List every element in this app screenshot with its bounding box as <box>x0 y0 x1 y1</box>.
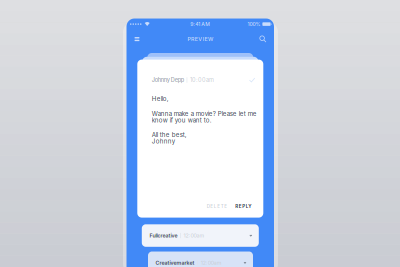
staticText: PREVIEW <box>187 36 213 42</box>
staticText: Hello, <box>152 95 169 102</box>
button[interactable]: Fullcreative <box>142 224 259 247</box>
staticText: REPLY <box>235 204 251 209</box>
staticText: 12:00am <box>201 259 222 266</box>
staticText: know if you want to. <box>152 116 212 124</box>
staticText: 12:00am <box>184 232 205 239</box>
staticText: 10:00am <box>190 77 214 83</box>
button[interactable]: Menu <box>127 32 147 46</box>
staticText: All the best, <box>152 131 187 138</box>
button[interactable]: REPLY <box>227 204 251 209</box>
staticText: 100% <box>248 21 261 27</box>
staticText: Johnny Depp <box>152 77 184 83</box>
button[interactable]: Creativemarket <box>148 251 253 267</box>
staticText: DELETE <box>207 204 227 209</box>
staticText: Creativemarket <box>156 260 195 266</box>
button[interactable]: Search <box>253 32 273 46</box>
button[interactable]: DELETE <box>207 204 227 209</box>
staticText: 9:41 AM <box>190 21 210 27</box>
staticText: Wanna make a movie? Please let me <box>152 110 257 117</box>
staticText: Johnny <box>152 137 175 145</box>
staticText: Fullcreative <box>149 232 177 239</box>
